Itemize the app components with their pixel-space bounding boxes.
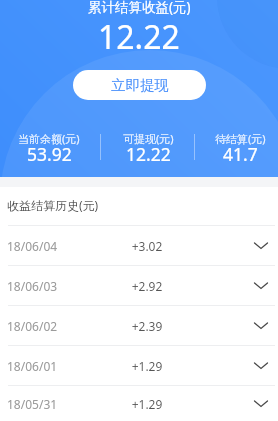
staticText: 立即提现 [111, 76, 169, 94]
staticText: 可提现(元) [123, 131, 174, 146]
staticText: +2.39 [107, 318, 187, 334]
staticText: 12.22 [126, 142, 171, 166]
staticText: +2.92 [107, 278, 187, 294]
button[interactable]: 18/06/04 [0, 226, 278, 265]
staticText: +1.29 [107, 358, 187, 374]
staticText: 收益结算历史(元) [7, 197, 99, 213]
staticText: +1.29 [107, 396, 187, 412]
staticText: +3.02 [107, 238, 187, 254]
staticText: 待结算(元) [215, 131, 266, 146]
staticText: 累计结算收益(元) [88, 0, 191, 16]
staticText: 53.92 [27, 142, 72, 166]
staticText: 12.22 [98, 15, 180, 59]
staticText: 18/06/01 [7, 358, 58, 374]
button[interactable]: 18/06/01 [0, 346, 278, 385]
button[interactable]: 18/05/31 [0, 386, 278, 421]
staticText: 18/05/31 [7, 396, 58, 412]
staticText: 18/06/04 [7, 238, 58, 254]
button[interactable]: 立即提现 [73, 70, 206, 100]
button[interactable]: 18/06/02 [0, 306, 278, 345]
staticText: 当前余额(元) [18, 131, 80, 146]
staticText: 18/06/02 [7, 318, 58, 334]
button[interactable]: 18/06/03 [0, 266, 278, 305]
staticText: 41.7 [223, 142, 258, 166]
staticText: 18/06/03 [7, 278, 58, 294]
